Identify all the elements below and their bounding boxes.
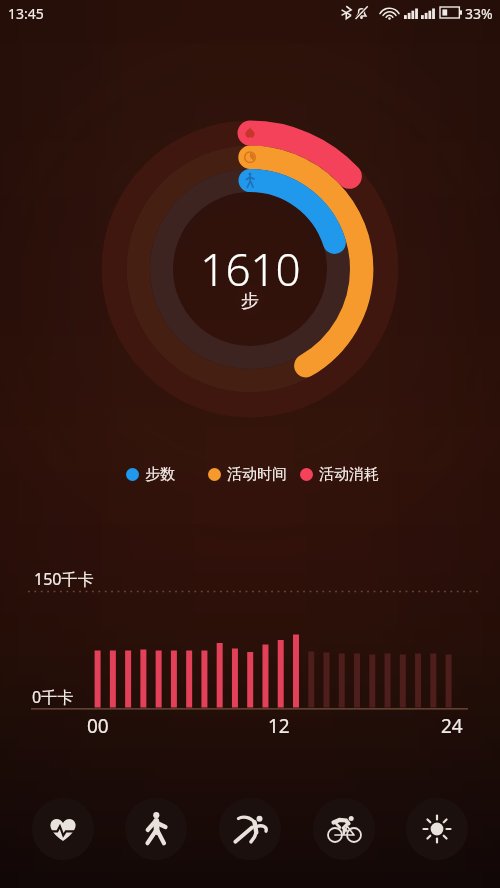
button[interactable]: Walking (125, 798, 187, 860)
staticText: 1610 (200, 239, 301, 299)
staticText: 150千卡 (34, 568, 94, 590)
button[interactable]: Heart rate (32, 798, 94, 860)
staticText: 活动消耗 (319, 465, 379, 484)
staticText: 活动时间 (227, 465, 287, 484)
staticText: 24 (441, 713, 463, 739)
staticText: 步 (241, 290, 259, 313)
staticText: 12 (268, 713, 290, 739)
staticText: 33% (465, 4, 493, 23)
staticText: 13:45 (8, 4, 44, 23)
button[interactable]: Running (219, 798, 281, 860)
button[interactable]: Cycling (313, 798, 375, 860)
staticText: 步数 (145, 465, 175, 484)
button[interactable]: Brightness (406, 798, 468, 860)
staticText: 0千卡 (32, 686, 74, 708)
staticText: 00 (87, 713, 109, 739)
